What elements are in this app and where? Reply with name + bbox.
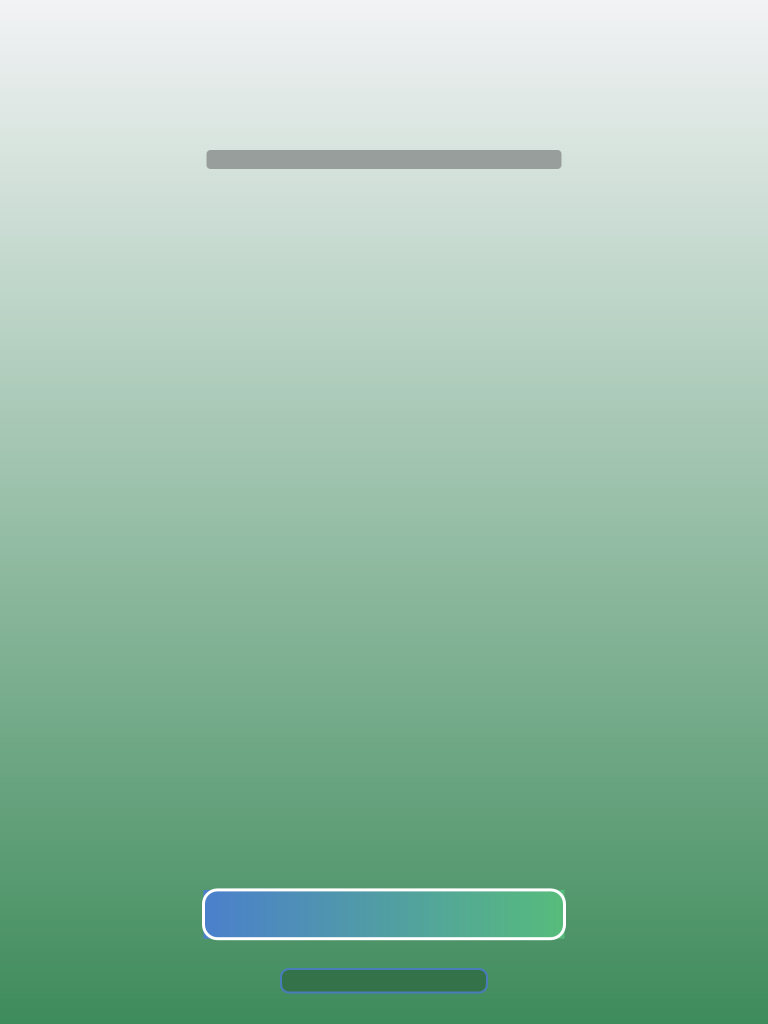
button[interactable]: Secondary action bbox=[281, 969, 487, 992]
button[interactable]: Continue bbox=[203, 890, 564, 939]
